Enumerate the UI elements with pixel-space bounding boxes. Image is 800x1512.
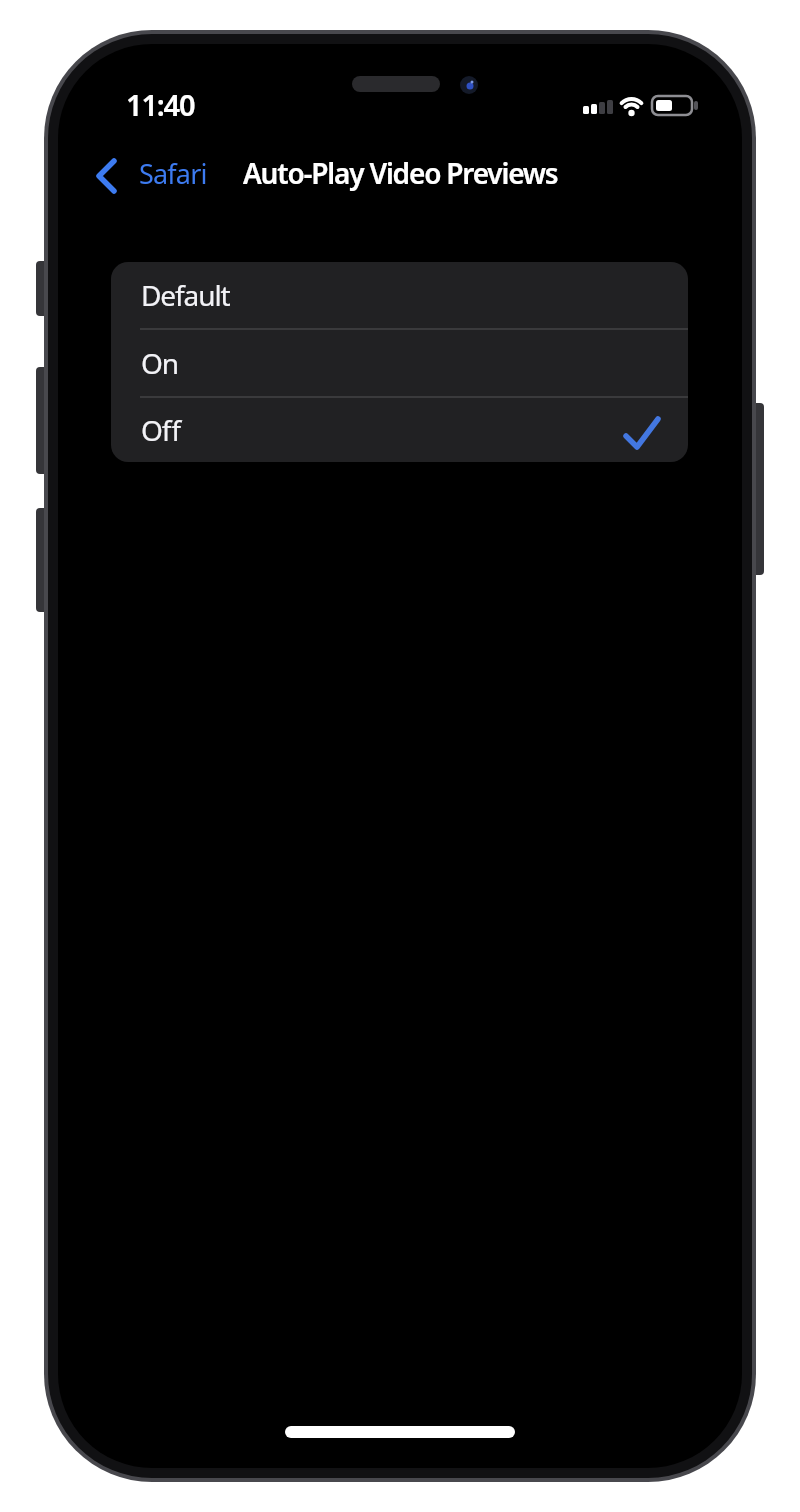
staticText: Off [141, 411, 180, 449]
button[interactable]: Safari [92, 147, 207, 199]
staticText: 11:40 [126, 85, 195, 119]
button[interactable]: Off [111, 398, 688, 462]
staticText: On [141, 344, 178, 382]
staticText: Auto-Play Video Previews [243, 154, 558, 192]
button[interactable]: Default [111, 262, 688, 328]
button[interactable]: On [111, 330, 688, 396]
staticText: Safari [139, 155, 207, 192]
staticText: Default [141, 276, 230, 314]
